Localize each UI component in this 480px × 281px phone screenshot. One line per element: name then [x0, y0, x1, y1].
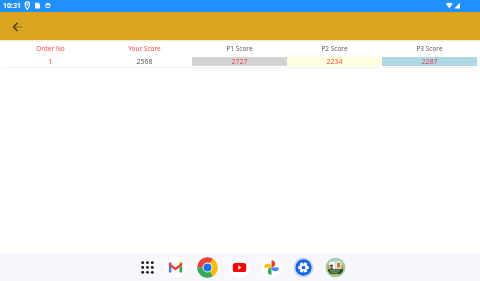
button[interactable]: YouTube	[229, 257, 250, 278]
button[interactable]: 1	[3, 57, 477, 66]
button[interactable]: Settings	[293, 257, 314, 278]
staticText: 2568	[136, 57, 153, 66]
staticText: 2287	[421, 57, 438, 66]
staticText: 2234	[326, 57, 343, 66]
staticText: Order No	[36, 44, 65, 53]
button[interactable]: Chrome	[197, 257, 218, 278]
button[interactable]: Gmail	[165, 257, 186, 278]
staticText: 1	[48, 57, 53, 66]
button[interactable]: Apps	[137, 257, 158, 278]
staticText: P1 Score	[226, 44, 253, 53]
button[interactable]: Back	[9, 19, 25, 35]
staticText: P3 Score	[416, 44, 443, 53]
staticText: P2 Score	[321, 44, 348, 53]
staticText: 10:31	[3, 1, 21, 11]
button[interactable]: Files	[325, 257, 346, 278]
staticText: 2727	[231, 57, 248, 66]
button[interactable]: Google Photos	[261, 257, 282, 278]
staticText: Your Score	[128, 44, 161, 53]
